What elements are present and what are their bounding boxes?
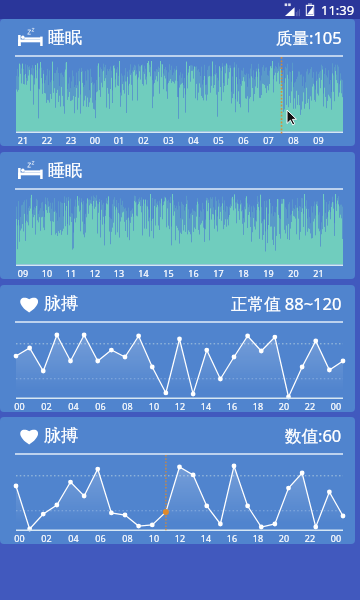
staticText: 04 bbox=[60, 532, 87, 544]
staticText: 21 bbox=[11, 134, 35, 146]
staticText: 06 bbox=[87, 532, 114, 544]
staticText: 23 bbox=[59, 134, 83, 146]
staticText: 正常值 88~120 bbox=[231, 292, 342, 315]
staticText: 20 bbox=[271, 400, 297, 412]
staticText: 19 bbox=[256, 267, 281, 279]
staticText: 18 bbox=[245, 400, 271, 412]
staticText: 08 bbox=[281, 134, 306, 146]
staticText: 05 bbox=[206, 134, 231, 146]
staticText: 22 bbox=[297, 400, 323, 412]
other: Pulse bbox=[17, 294, 40, 313]
staticText: 00 bbox=[323, 400, 349, 412]
staticText: 14 bbox=[193, 532, 219, 544]
staticText: 12 bbox=[167, 400, 193, 412]
other: Sleep bbox=[17, 28, 44, 48]
other: Sleep bbox=[17, 161, 44, 181]
button[interactable]: Sleep bbox=[0, 152, 355, 279]
staticText: 00 bbox=[6, 400, 33, 412]
staticText: 08 bbox=[114, 532, 141, 544]
button[interactable]: Pulse bbox=[0, 285, 355, 412]
staticText: 数值:60 bbox=[285, 424, 342, 447]
staticText: 09 bbox=[11, 267, 35, 279]
staticText: 03 bbox=[156, 134, 181, 146]
staticText: 06 bbox=[231, 134, 256, 146]
staticText: 06 bbox=[87, 400, 114, 412]
button[interactable]: Sleep bbox=[0, 19, 355, 146]
staticText: 01 bbox=[107, 134, 131, 146]
staticText: 16 bbox=[219, 400, 245, 412]
staticText: 22 bbox=[35, 134, 59, 146]
staticText: 脉搏 bbox=[44, 425, 78, 446]
staticText: 10 bbox=[35, 267, 59, 279]
other: Battery bbox=[305, 3, 315, 17]
staticText: 02 bbox=[33, 400, 60, 412]
staticText: 00 bbox=[323, 532, 349, 544]
staticText: 15 bbox=[156, 267, 181, 279]
staticText: 12 bbox=[167, 532, 193, 544]
staticText: 16 bbox=[181, 267, 206, 279]
staticText: 02 bbox=[131, 134, 156, 146]
staticText: 04 bbox=[60, 400, 87, 412]
staticText: 20 bbox=[281, 267, 306, 279]
staticText: 17 bbox=[206, 267, 231, 279]
staticText: 14 bbox=[131, 267, 156, 279]
other: Pulse bbox=[17, 426, 40, 445]
staticText: 20 bbox=[271, 532, 297, 544]
staticText: 13 bbox=[107, 267, 131, 279]
staticText: 09 bbox=[306, 134, 331, 146]
staticText: 16 bbox=[219, 532, 245, 544]
staticText: 02 bbox=[33, 532, 60, 544]
staticText: 脉搏 bbox=[44, 293, 78, 314]
staticText: 睡眠 bbox=[48, 27, 82, 48]
staticText: 睡眠 bbox=[48, 160, 82, 181]
staticText: 18 bbox=[245, 532, 271, 544]
staticText: 00 bbox=[83, 134, 107, 146]
staticText: 14 bbox=[193, 400, 219, 412]
staticText: 10 bbox=[141, 532, 167, 544]
staticText: 07 bbox=[256, 134, 281, 146]
staticText: 21 bbox=[306, 267, 331, 279]
staticText: 11:39 bbox=[321, 1, 355, 19]
staticText: 18 bbox=[231, 267, 256, 279]
staticText: 22 bbox=[297, 532, 323, 544]
staticText: 12 bbox=[83, 267, 107, 279]
staticText: 11 bbox=[59, 267, 83, 279]
staticText: 00 bbox=[6, 532, 33, 544]
button[interactable]: Pulse bbox=[0, 417, 355, 544]
staticText: 质量:105 bbox=[276, 26, 342, 49]
staticText: 04 bbox=[181, 134, 206, 146]
staticText: 10 bbox=[141, 400, 167, 412]
other: Mobile signal 3G bbox=[284, 3, 300, 17]
staticText: 08 bbox=[114, 400, 141, 412]
